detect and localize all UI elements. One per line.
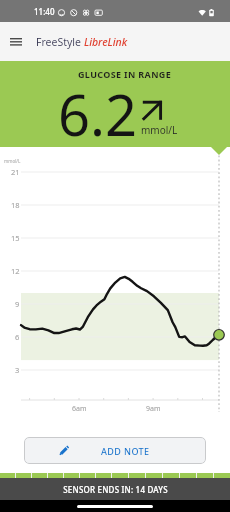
staticText: 3 [15,365,20,375]
button[interactable]: ADD NOTE [24,437,206,464]
staticText: 9 [15,299,20,309]
staticText: SENSOR ENDS IN: 14 DAYS [63,484,168,495]
staticText: GLUCOSE IN RANGE [78,68,172,80]
staticText: mmol/L [141,123,178,137]
staticText: 6am [72,404,87,414]
staticText: 12 [11,266,20,276]
staticText: ADD NOTE [101,445,150,457]
staticText: 15 [11,233,20,243]
staticText: 9am [146,404,161,414]
staticText: mmol/L [4,158,21,164]
staticText: FreeStyle [36,35,84,49]
staticText: 11:40 [34,6,55,17]
staticText: LibreLink [84,35,128,49]
button[interactable]: Open navigation menu [0,22,32,61]
staticText: 18 [11,200,20,210]
staticText: 6.2 [58,76,138,152]
staticText: 21 [11,167,20,177]
staticText: 6 [15,332,20,342]
